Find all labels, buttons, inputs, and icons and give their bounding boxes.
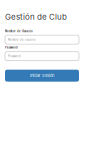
staticText: Nombre de usuario (8, 37, 36, 42)
staticText: Password (8, 54, 21, 58)
staticText: Gestión de Club (5, 12, 67, 22)
button[interactable]: Iniciar Sesión (5, 70, 79, 82)
staticText: Iniciar Sesión (30, 73, 54, 78)
staticText: Password (5, 45, 18, 50)
staticText: Nombre de Usuario (5, 29, 33, 33)
